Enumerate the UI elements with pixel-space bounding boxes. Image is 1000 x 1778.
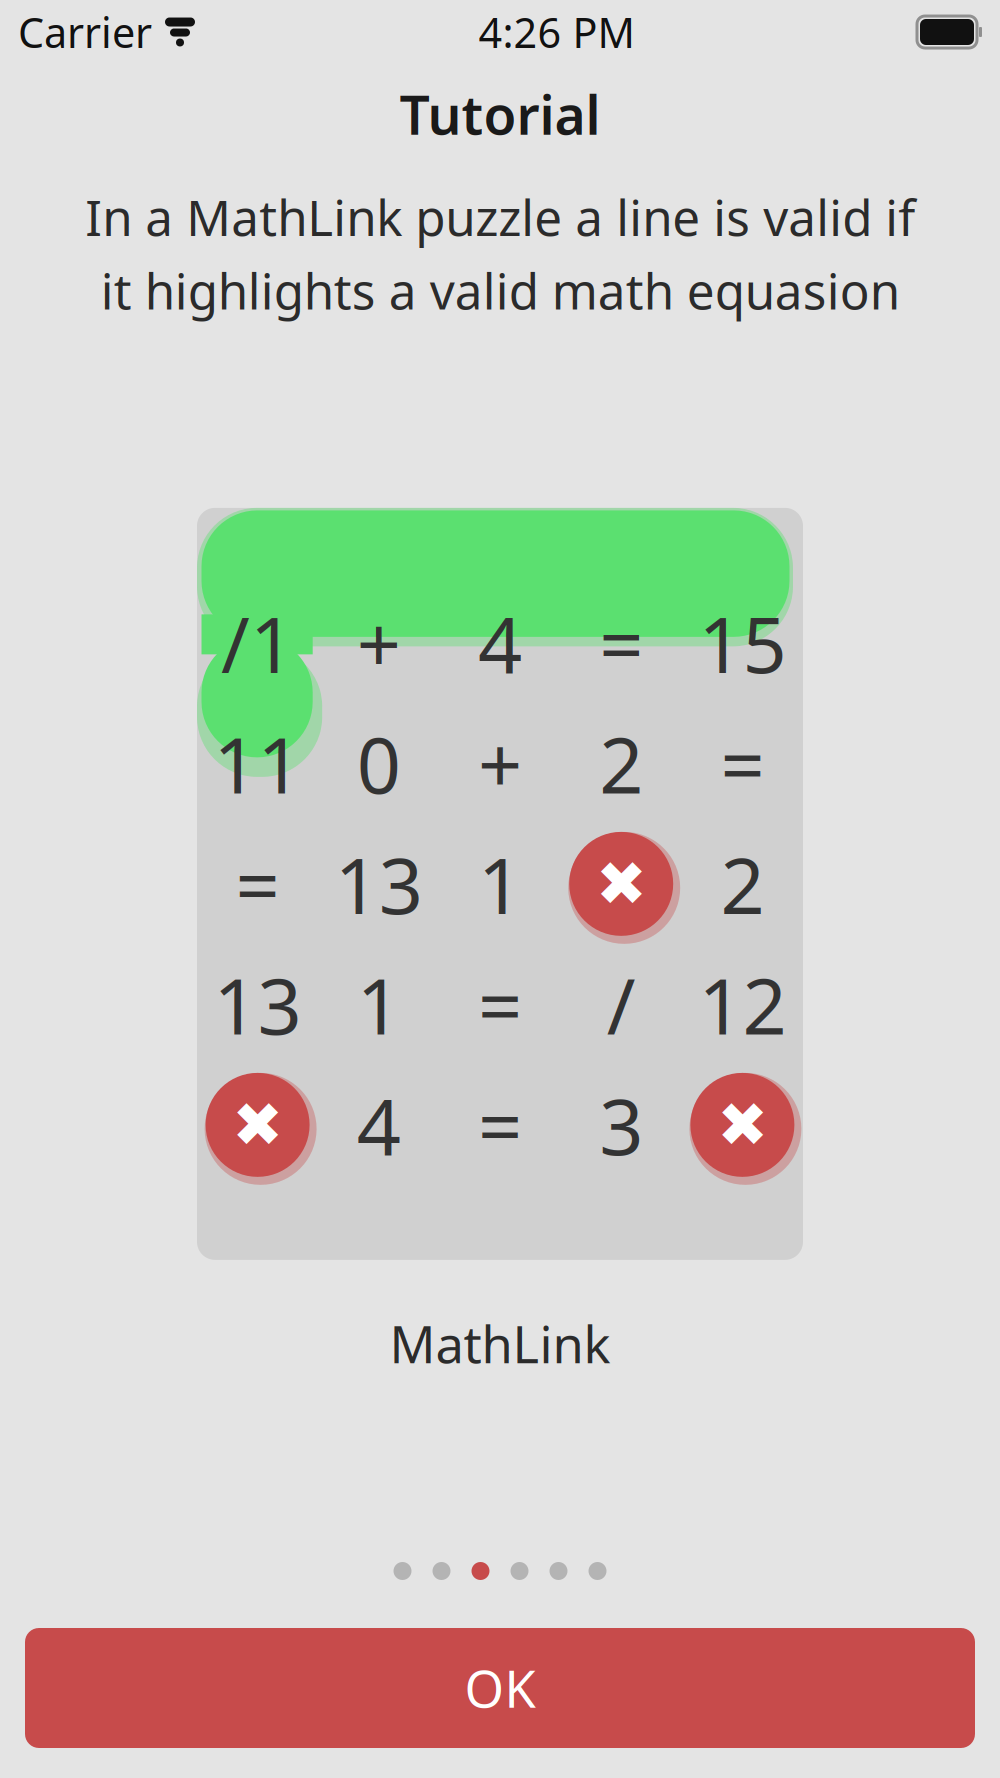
staticText: + bbox=[478, 712, 522, 815]
staticText: = bbox=[720, 712, 764, 815]
staticText: In a MathLink puzzle a line is valid if … bbox=[85, 184, 915, 323]
staticText: = bbox=[236, 832, 280, 935]
staticText: 11 bbox=[214, 712, 302, 815]
staticText: Carrier bbox=[18, 5, 152, 59]
staticText: 4 bbox=[478, 591, 522, 694]
staticText: 12 bbox=[698, 953, 786, 1056]
staticText: 4 bbox=[357, 1073, 401, 1176]
staticText: 2 bbox=[599, 712, 643, 815]
staticText: 0 bbox=[357, 712, 401, 815]
staticText: = bbox=[478, 1073, 522, 1176]
staticText: 2 bbox=[720, 832, 764, 935]
staticText: ✖ bbox=[596, 849, 647, 919]
staticText: = bbox=[599, 591, 643, 694]
staticText: ✖ bbox=[232, 1090, 283, 1160]
staticText: MathLink bbox=[389, 1310, 610, 1377]
staticText: 1 bbox=[357, 953, 401, 1056]
staticText: /1 bbox=[221, 591, 294, 694]
staticText: + bbox=[357, 591, 401, 694]
staticText: 1 bbox=[478, 832, 522, 935]
staticText: 4:26 PM bbox=[478, 5, 634, 59]
staticText: 3 bbox=[599, 1073, 643, 1176]
staticText: ✖ bbox=[717, 1090, 768, 1160]
staticText: = bbox=[478, 953, 522, 1056]
staticText: 13 bbox=[214, 953, 302, 1056]
staticText: / bbox=[607, 953, 636, 1056]
staticText: 13 bbox=[335, 832, 423, 935]
button[interactable]: OK bbox=[25, 1628, 975, 1748]
staticText: 15 bbox=[698, 591, 786, 694]
staticText: OK bbox=[464, 1654, 535, 1722]
staticText: Tutorial bbox=[399, 79, 600, 149]
